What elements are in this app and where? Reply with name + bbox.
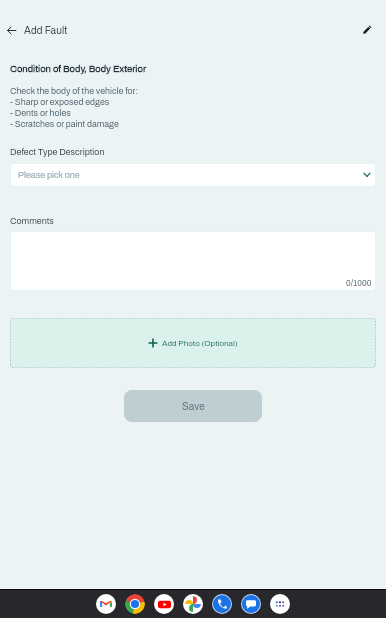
button[interactable]: Save <box>124 390 262 422</box>
staticText: Condition of Body, Body Exterior <box>10 64 147 74</box>
button[interactable]: 0/1000 <box>10 231 376 291</box>
staticText: Comments <box>10 216 54 226</box>
staticText: Add Photo (Optional) <box>162 339 238 348</box>
button[interactable]: Edit <box>353 15 381 43</box>
staticText: Check the body of the vehicle for: - Sha… <box>10 86 139 128</box>
staticText: Save <box>182 401 205 412</box>
button[interactable]: Messages <box>241 594 261 614</box>
button[interactable]: Phone <box>212 594 232 614</box>
staticText: 0/1000 <box>346 279 372 288</box>
button[interactable]: Add Photo (Optional) <box>10 318 376 368</box>
button[interactable]: Chrome <box>125 594 145 614</box>
staticText: Please pick one <box>18 170 80 180</box>
other: Expand <box>363 171 371 179</box>
button[interactable]: Back <box>0 16 25 44</box>
button[interactable]: All apps <box>270 594 290 614</box>
staticText: Add Fault <box>24 25 68 36</box>
button[interactable]: Please pick one <box>10 163 376 187</box>
button[interactable]: Photos <box>183 594 203 614</box>
staticText: Defect Type Description <box>10 147 105 157</box>
button[interactable]: YouTube <box>154 594 174 614</box>
button[interactable]: Gmail <box>96 594 116 614</box>
